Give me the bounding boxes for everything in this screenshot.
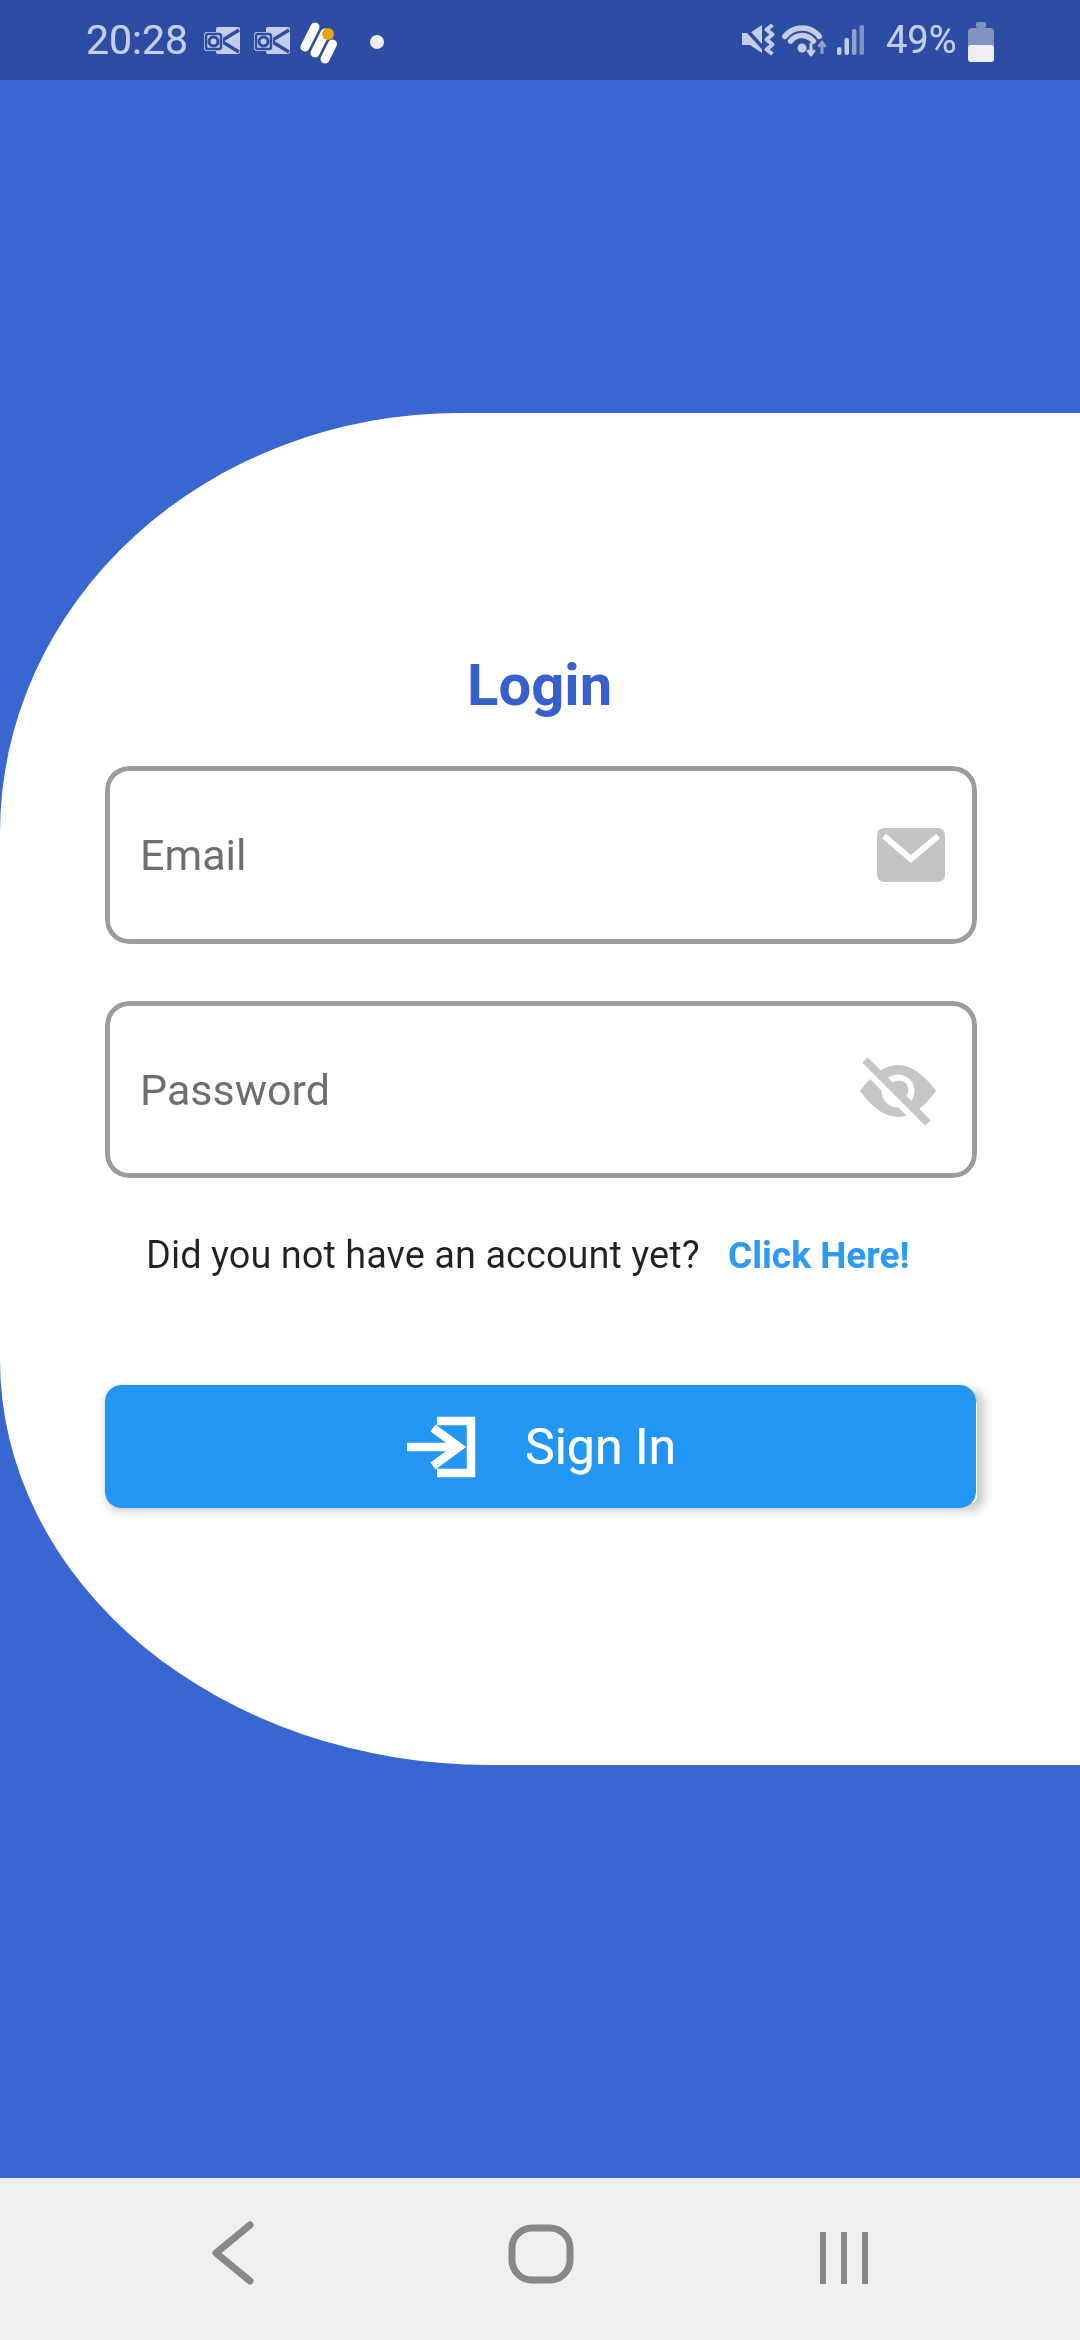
button[interactable] bbox=[190, 2178, 280, 2340]
staticText: Password bbox=[140, 1065, 330, 1115]
button[interactable]: Email bbox=[105, 766, 977, 944]
staticText: Sign In bbox=[525, 1418, 677, 1477]
staticText: Did you not have an account yet? bbox=[146, 1233, 700, 1278]
staticText: Click Here! bbox=[728, 1234, 910, 1277]
staticText: 49% bbox=[886, 18, 957, 63]
staticText: Login bbox=[467, 651, 613, 719]
button[interactable]: Click Here! bbox=[728, 1234, 910, 1277]
button[interactable] bbox=[495, 2178, 585, 2340]
staticText: Email bbox=[140, 830, 247, 880]
button[interactable] bbox=[799, 2178, 889, 2340]
button[interactable]: Password bbox=[105, 1001, 977, 1178]
button[interactable]: Sign In bbox=[105, 1385, 976, 1508]
staticText: 20:28 bbox=[86, 16, 189, 64]
